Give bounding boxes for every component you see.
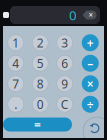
staticText: 5 [37, 55, 44, 71]
staticText: ÷ [87, 96, 94, 112]
button[interactable]: 9 [52, 73, 77, 94]
button[interactable]: 3 [52, 32, 77, 53]
button[interactable]: Subtract [77, 53, 103, 73]
staticText: 0 [37, 96, 44, 112]
button[interactable]: 5 [28, 53, 52, 73]
staticText: . [14, 96, 17, 112]
staticText: – [87, 55, 93, 71]
button[interactable]: Divide [77, 94, 103, 114]
button[interactable]: Multiply [77, 73, 103, 94]
staticText: 0 [69, 6, 77, 24]
staticText: × [87, 76, 94, 92]
button[interactable]: 2 [28, 32, 52, 53]
button[interactable]: = [3, 117, 72, 131]
staticText: 4 [12, 55, 19, 71]
staticText: 7 [12, 76, 19, 92]
staticText: 2 [37, 35, 44, 51]
button[interactable]: 7 [3, 73, 28, 94]
staticText: = [34, 116, 41, 132]
button[interactable]: 4 [3, 53, 28, 73]
button[interactable]: 8 [28, 73, 52, 94]
staticText: 9 [61, 76, 68, 92]
staticText: 6 [61, 55, 68, 71]
button[interactable]: 0 [28, 94, 52, 114]
button[interactable]: 1 [3, 32, 28, 53]
staticText: + [87, 35, 94, 51]
button[interactable]: . [3, 94, 28, 114]
staticText: 3 [61, 35, 68, 51]
button[interactable]: Delete [82, 9, 97, 20]
staticText: × [88, 10, 93, 20]
button[interactable]: Add [77, 32, 103, 53]
button[interactable]: 6 [52, 53, 77, 73]
staticText: C [61, 96, 69, 112]
button[interactable]: Undo [83, 117, 107, 140]
staticText: 1 [12, 35, 19, 51]
button[interactable]: C [52, 94, 77, 114]
staticText: 8 [37, 76, 44, 92]
